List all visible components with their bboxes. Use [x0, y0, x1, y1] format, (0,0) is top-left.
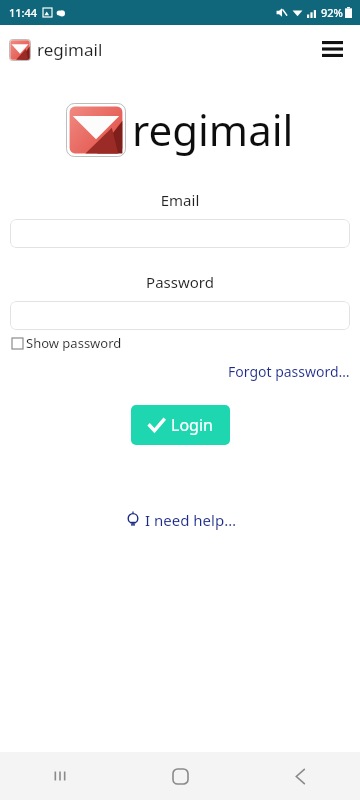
staticText: Password — [0, 272, 360, 292]
button[interactable] — [10, 219, 350, 248]
button[interactable] — [10, 301, 350, 330]
staticText: Show password — [26, 334, 122, 352]
staticText: I need help… — [145, 510, 236, 530]
staticText: Login — [171, 414, 213, 436]
button[interactable]: Forgot password… — [228, 362, 350, 381]
staticText: Email — [0, 190, 360, 210]
staticText: regimail — [132, 101, 294, 158]
button[interactable]: Login — [131, 405, 230, 445]
staticText: 92% — [321, 5, 343, 20]
button[interactable]: I need help… — [125, 510, 236, 530]
staticText: regimail — [37, 38, 103, 61]
button[interactable]: Recents — [0, 752, 120, 800]
button[interactable]: Menu — [312, 29, 352, 69]
button[interactable]: Back — [240, 752, 360, 800]
button[interactable]: Show password — [12, 334, 122, 352]
staticText: 11:44 — [9, 5, 38, 20]
button[interactable]: Home — [120, 752, 240, 800]
staticText: Forgot password… — [228, 362, 350, 381]
